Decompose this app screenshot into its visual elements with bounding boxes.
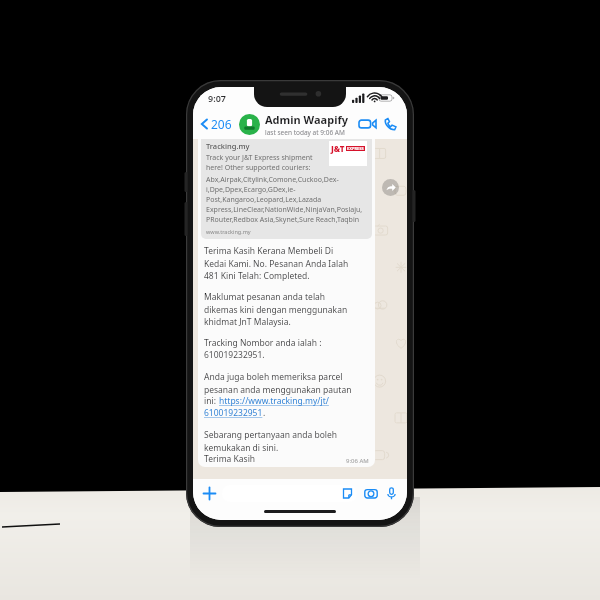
staticText: 610019232951	[204, 407, 263, 419]
staticText: Tracking Nombor anda ialah :	[204, 337, 322, 349]
staticText: 610019232951.	[204, 349, 265, 361]
staticText: .	[263, 407, 266, 419]
button[interactable]: Tracking.my	[198, 139, 375, 467]
staticText: Admin Waapify	[265, 112, 348, 127]
button[interactable]: Admin Waapify	[239, 109, 354, 139]
staticText: last seen today at 9:06 AM	[265, 128, 345, 137]
staticText: Terima Kasih Kerana Membeli Di Kedai Kam…	[204, 245, 349, 281]
button[interactable]: Attach	[200, 484, 218, 502]
button[interactable]: Record voice message	[383, 485, 400, 502]
staticText: Sebarang pertanyaan anda boleh kemukakan…	[204, 429, 338, 453]
staticText: Tracking.my	[206, 141, 250, 151]
button[interactable]: https://www.tracking.my/jt/	[219, 395, 329, 407]
staticText: https://www.tracking.my/jt/	[219, 395, 329, 407]
staticText: Anda juga boleh memeriksa parcel pesanan…	[204, 371, 352, 395]
staticText: J&T	[331, 143, 345, 154]
staticText: Maklumat pesanan anda telah dikemas kini…	[204, 291, 348, 327]
staticText: www.tracking.my	[206, 228, 251, 235]
staticText: Track your J&T Express shipment here! Ot…	[206, 153, 313, 173]
button[interactable]	[222, 485, 357, 502]
button[interactable]: Forward message	[382, 179, 399, 196]
staticText: 9:06 AM	[346, 457, 369, 465]
button[interactable]: Back	[193, 116, 235, 132]
staticText: 9:07	[208, 92, 226, 104]
button[interactable]: Camera	[362, 485, 379, 502]
button[interactable]: 610019232951	[204, 407, 263, 419]
staticText: Terima Kasih	[204, 453, 256, 465]
staticText: 206	[211, 116, 232, 132]
button[interactable]: Tracking.my	[201, 139, 372, 239]
staticText: Abx,Airpak,Citylink,Comone,Cuckoo,Dex- i…	[206, 175, 363, 225]
staticText: ini:	[204, 395, 219, 407]
staticText: EXPRESS	[347, 146, 364, 151]
button[interactable]: Voice call	[381, 118, 407, 131]
button[interactable]: Video call	[354, 118, 381, 130]
